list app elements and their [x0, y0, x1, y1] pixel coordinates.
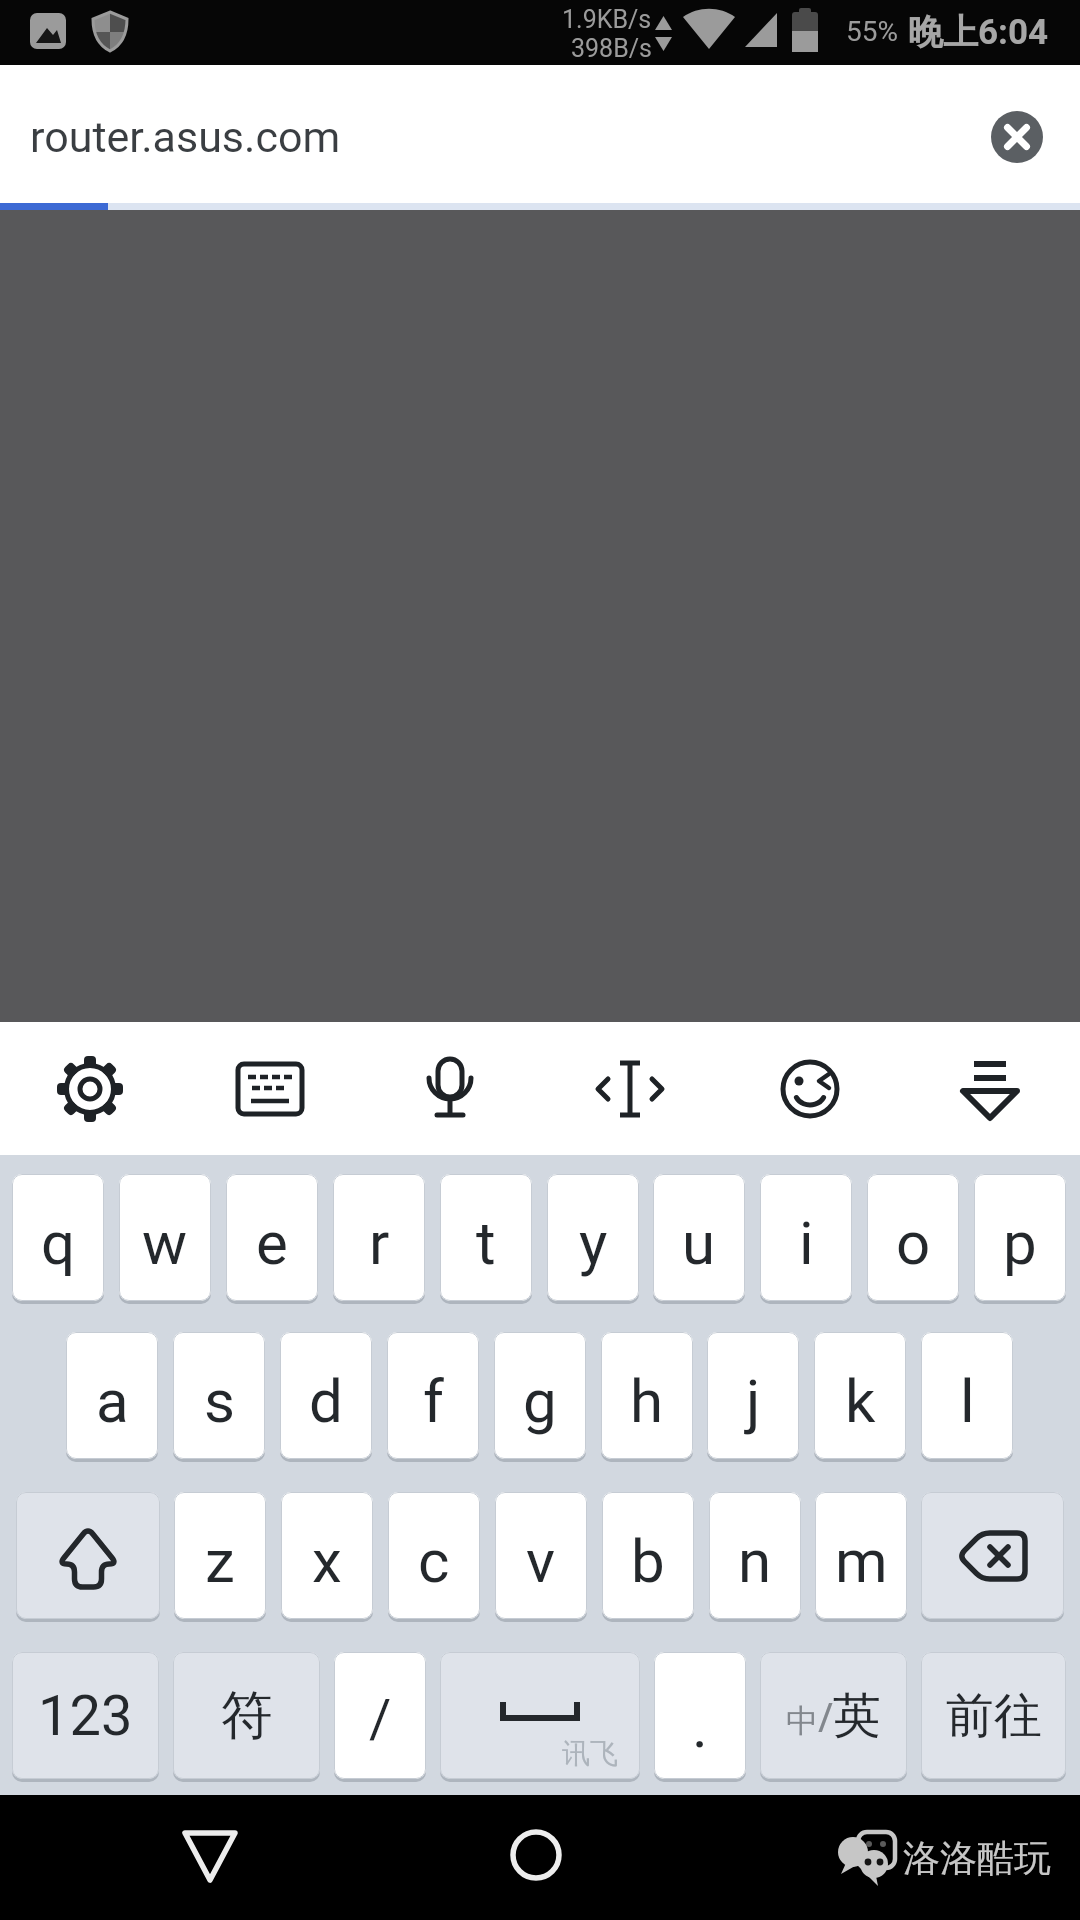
- button[interactable]: w: [119, 1174, 211, 1301]
- button[interactable]: p: [974, 1174, 1066, 1301]
- staticText: h: [630, 1366, 664, 1436]
- staticText: 123: [38, 1683, 133, 1749]
- button[interactable]: e: [226, 1174, 318, 1301]
- staticText: 晚上6:04: [908, 10, 1049, 54]
- button[interactable]: t: [440, 1174, 532, 1301]
- button[interactable]: [360, 1022, 540, 1155]
- button[interactable]: 前往: [921, 1652, 1066, 1779]
- staticText: n: [738, 1526, 772, 1596]
- staticText: 398B/s: [571, 34, 652, 63]
- staticText: b: [631, 1526, 665, 1596]
- staticText: router.asus.com: [30, 112, 341, 162]
- staticText: v: [526, 1526, 556, 1596]
- staticText: .: [692, 1691, 708, 1761]
- button[interactable]: [180, 1022, 360, 1155]
- button[interactable]: n: [709, 1492, 801, 1619]
- button[interactable]: [16, 1492, 160, 1619]
- button[interactable]: r: [333, 1174, 425, 1301]
- button[interactable]: [720, 1022, 900, 1155]
- staticText: 55%: [846, 15, 898, 48]
- staticText: f: [423, 1366, 444, 1436]
- button[interactable]: [991, 111, 1043, 163]
- button[interactable]: k: [814, 1332, 906, 1459]
- button[interactable]: 中/英: [760, 1652, 907, 1779]
- button[interactable]: .: [654, 1652, 746, 1779]
- button[interactable]: l: [921, 1332, 1013, 1459]
- button[interactable]: b: [602, 1492, 694, 1619]
- button[interactable]: 123: [12, 1652, 159, 1779]
- staticText: g: [523, 1366, 557, 1436]
- staticText: 符: [221, 1683, 273, 1749]
- button[interactable]: d: [280, 1332, 372, 1459]
- button[interactable]: h: [601, 1332, 693, 1459]
- staticText: z: [205, 1526, 235, 1596]
- button[interactable]: 讯飞: [440, 1652, 640, 1779]
- button[interactable]: [921, 1492, 1064, 1619]
- button[interactable]: i: [760, 1174, 852, 1301]
- staticText: 中/英: [786, 1686, 881, 1746]
- button[interactable]: f: [387, 1332, 479, 1459]
- staticText: 前往: [946, 1686, 1042, 1746]
- staticText: a: [96, 1366, 129, 1436]
- staticText: s: [204, 1366, 235, 1436]
- staticText: o: [896, 1208, 931, 1278]
- staticText: 讯飞: [562, 1736, 618, 1771]
- button[interactable]: 符: [173, 1652, 320, 1779]
- staticText: q: [41, 1208, 76, 1278]
- staticText: p: [1003, 1208, 1037, 1278]
- staticText: x: [312, 1526, 342, 1596]
- staticText: r: [369, 1208, 390, 1278]
- staticText: /: [369, 1687, 392, 1750]
- button[interactable]: m: [815, 1492, 907, 1619]
- button[interactable]: q: [12, 1174, 104, 1301]
- button[interactable]: [900, 1022, 1080, 1155]
- button[interactable]: o: [867, 1174, 959, 1301]
- staticText: c: [418, 1526, 450, 1596]
- staticText: t: [476, 1208, 496, 1278]
- button[interactable]: x: [281, 1492, 373, 1619]
- staticText: u: [682, 1208, 716, 1278]
- staticText: e: [256, 1208, 288, 1278]
- button[interactable]: [160, 1805, 260, 1905]
- button[interactable]: [0, 1022, 180, 1155]
- button[interactable]: [540, 1022, 720, 1155]
- button[interactable]: z: [174, 1492, 266, 1619]
- staticText: k: [845, 1366, 876, 1436]
- button[interactable]: s: [173, 1332, 265, 1459]
- staticText: l: [960, 1366, 975, 1436]
- button[interactable]: g: [494, 1332, 586, 1459]
- button[interactable]: y: [547, 1174, 639, 1301]
- staticText: y: [579, 1208, 608, 1278]
- button[interactable]: u: [653, 1174, 745, 1301]
- staticText: m: [835, 1526, 888, 1596]
- staticText: d: [309, 1366, 343, 1436]
- button[interactable]: a: [66, 1332, 158, 1459]
- button[interactable]: v: [495, 1492, 587, 1619]
- button[interactable]: /: [334, 1652, 426, 1779]
- staticText: 洛洛酷玩: [903, 1835, 1051, 1882]
- staticText: w: [142, 1208, 188, 1278]
- staticText: 1.9KB/s: [562, 5, 652, 34]
- button[interactable]: c: [388, 1492, 480, 1619]
- button[interactable]: j: [707, 1332, 799, 1459]
- staticText: i: [799, 1208, 814, 1278]
- staticText: j: [746, 1366, 761, 1436]
- button[interactable]: [486, 1805, 586, 1905]
